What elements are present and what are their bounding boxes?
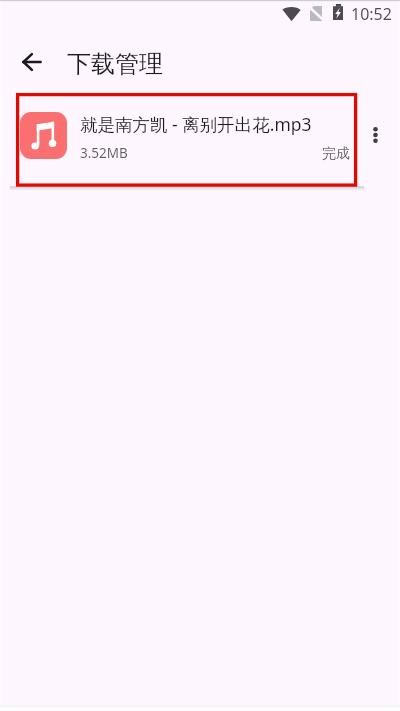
staticText: 下载管理 [67,49,163,79]
staticText: 就是南方凯 - 离别开出花.mp3 [80,112,312,136]
staticText: 完成 [322,145,350,163]
staticText: 3.52MB [80,144,128,162]
staticText: 10:52 [351,3,392,25]
button[interactable]: More options [355,115,395,155]
button[interactable]: Back [9,40,53,84]
button[interactable]: 就是南方凯 - 离别开出花.mp3 [0,95,400,187]
